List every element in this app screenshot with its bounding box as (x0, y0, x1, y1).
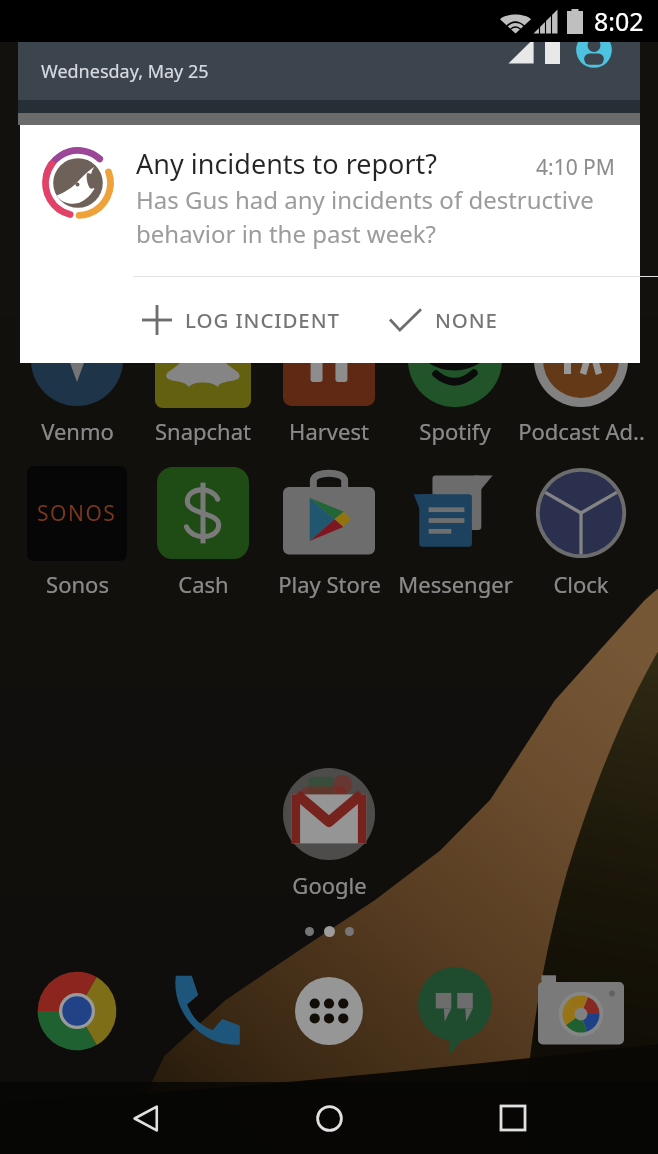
staticText: Cash (178, 569, 229, 599)
staticText: SONOS (37, 499, 117, 528)
button[interactable]: Harvest (266, 310, 392, 446)
staticText: Spotify (419, 416, 491, 446)
staticText: Sonos (46, 569, 109, 599)
staticText: NONE (435, 306, 498, 334)
button[interactable]: Google (266, 764, 392, 900)
staticText: LOG INCIDENT (185, 306, 340, 334)
button[interactable]: Messenger (392, 463, 518, 599)
button[interactable]: Hangouts (392, 961, 518, 1061)
button[interactable]: All apps (266, 961, 392, 1061)
staticText: Harvest (289, 416, 369, 446)
staticText: Podcast Ad.. (518, 416, 644, 446)
button[interactable]: Home (291, 1082, 367, 1154)
staticText: Venmo (41, 416, 114, 446)
button[interactable]: LOG INCIDENT (114, 277, 361, 363)
button[interactable]: Play Store (266, 463, 392, 599)
button[interactable]: Phone (140, 961, 266, 1061)
button[interactable]: Chrome (14, 961, 140, 1061)
staticText: 4:10 PM (536, 153, 615, 182)
staticText: Has Gus had any incidents of destructive… (136, 183, 636, 251)
button[interactable]: Venmo (14, 310, 140, 446)
button[interactable]: Spotify (392, 310, 518, 446)
staticText: Snapchat (155, 416, 251, 446)
button[interactable]: SONOS (14, 463, 140, 599)
button[interactable]: NONE (361, 277, 519, 363)
button[interactable]: Back (108, 1082, 184, 1154)
staticText: Wednesday, May 25 (41, 59, 209, 84)
button[interactable]: Camera (518, 961, 644, 1061)
button[interactable]: Cash (140, 463, 266, 599)
staticText: Any incidents to report? (136, 145, 438, 182)
staticText: Google (292, 870, 367, 900)
button[interactable]: Snapchat (140, 310, 266, 446)
button[interactable]: Podcast Ad.. (518, 310, 644, 446)
staticText: Play Store (278, 569, 381, 599)
button[interactable]: Recent apps (475, 1082, 551, 1154)
button[interactable]: Clock (518, 463, 644, 599)
staticText: Messenger (398, 569, 513, 599)
staticText: 8:02 (594, 4, 644, 38)
staticText: Clock (553, 569, 609, 599)
